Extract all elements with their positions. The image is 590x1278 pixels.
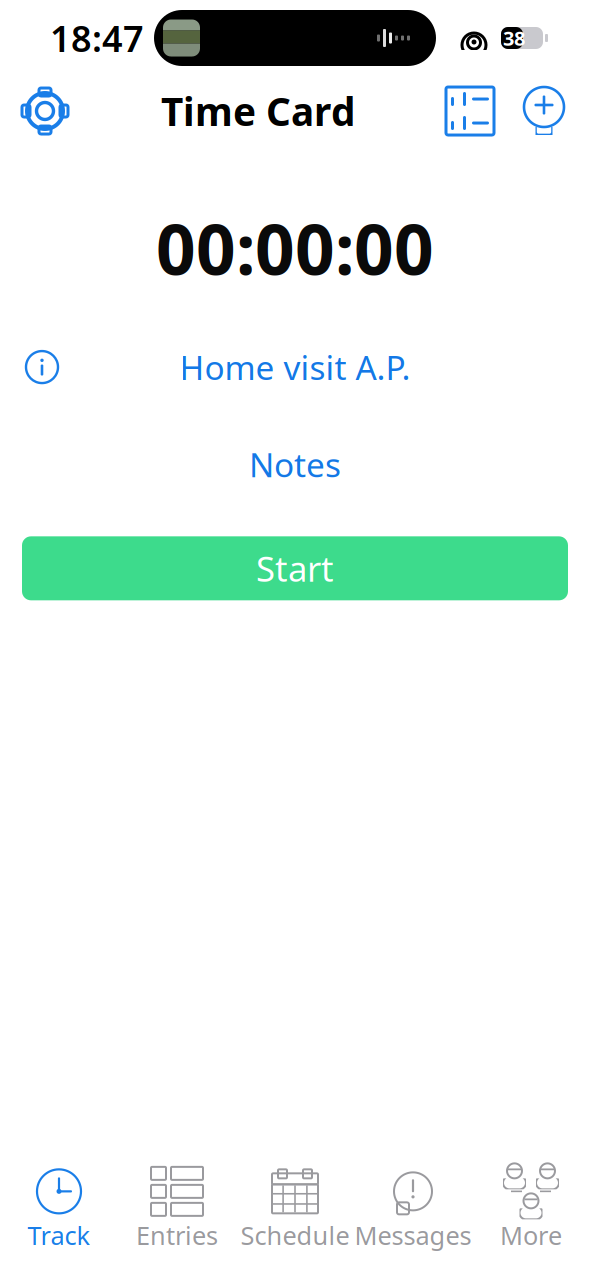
staticText: 00:00:00 xyxy=(156,202,434,294)
staticText: Track xyxy=(27,1218,90,1252)
button[interactable]: Home visit A.P. xyxy=(167,339,422,395)
button[interactable]: Tasks xyxy=(436,83,504,139)
staticText: Schedule xyxy=(240,1218,349,1252)
staticText: Notes xyxy=(249,442,341,486)
staticText: Entries xyxy=(136,1218,218,1252)
staticText: Start xyxy=(256,545,334,591)
button[interactable]: Job information xyxy=(0,347,62,387)
button[interactable]: Messages xyxy=(354,1165,472,1252)
staticText: More xyxy=(500,1218,562,1252)
button[interactable]: Notes xyxy=(231,434,359,494)
button[interactable]: Schedule xyxy=(236,1165,354,1252)
button[interactable]: Entries xyxy=(118,1165,236,1252)
button[interactable]: Start xyxy=(22,536,568,600)
button[interactable]: Settings xyxy=(0,80,80,142)
staticText: Messages xyxy=(354,1218,471,1252)
button[interactable]: More xyxy=(472,1165,590,1252)
staticText: Home visit A.P. xyxy=(179,345,410,389)
button[interactable]: Track xyxy=(0,1165,118,1252)
staticText: Time Card xyxy=(161,85,355,137)
staticText: 38 xyxy=(503,25,525,51)
staticText: 18:47 xyxy=(50,14,144,62)
button[interactable]: Add location xyxy=(504,83,590,139)
